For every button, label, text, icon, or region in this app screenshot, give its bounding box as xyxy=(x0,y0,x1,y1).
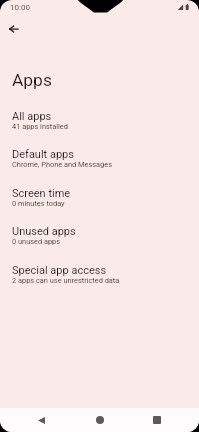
staticText: 10:00 xyxy=(10,3,30,12)
staticText: Chrome, Phone and Messages xyxy=(12,160,113,169)
button[interactable]: Back xyxy=(3,18,25,40)
staticText: Default apps xyxy=(12,148,74,161)
button[interactable]: All apps xyxy=(0,104,199,142)
staticText: All apps xyxy=(12,110,52,123)
staticText: 2 apps can use unrestricted data xyxy=(12,276,120,285)
button[interactable]: Screen time xyxy=(0,181,199,219)
staticText: Apps xyxy=(12,70,52,90)
button[interactable]: Recents xyxy=(145,408,169,432)
button[interactable]: Back xyxy=(29,408,53,432)
staticText: Unused apps xyxy=(12,225,76,238)
button[interactable]: Special app access xyxy=(0,258,199,296)
button[interactable]: Default apps xyxy=(0,142,199,180)
staticText: 0 minutes today xyxy=(12,199,65,208)
button[interactable]: Unused apps xyxy=(0,219,199,257)
staticText: Screen time xyxy=(12,187,71,200)
staticText: 0 unused apps xyxy=(12,237,61,246)
button[interactable]: Home xyxy=(88,408,112,432)
staticText: 41 apps installed xyxy=(12,122,68,131)
staticText: Special app access xyxy=(12,264,107,277)
